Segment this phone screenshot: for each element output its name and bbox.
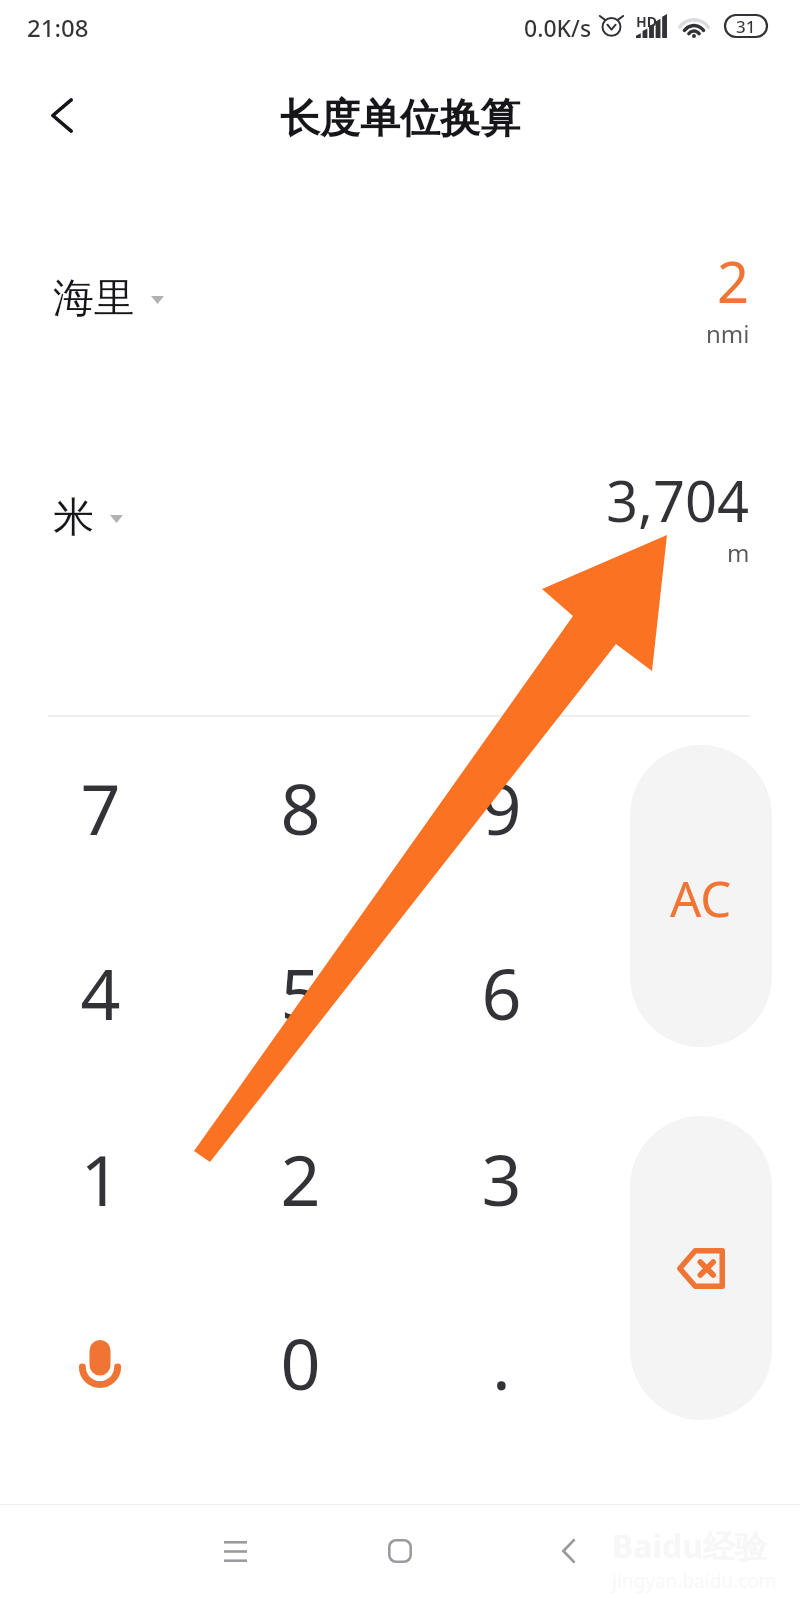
- staticText: 5: [280, 945, 321, 1040]
- staticText: 4: [80, 945, 121, 1040]
- staticText: 31: [736, 15, 756, 38]
- staticText: AC: [670, 865, 732, 932]
- button[interactable]: AC: [630, 745, 772, 1047]
- button[interactable]: Backspace: [630, 1116, 772, 1420]
- staticText: 21:08: [27, 11, 89, 44]
- staticText: 6: [481, 945, 522, 1040]
- button[interactable]: 海里: [0, 224, 800, 374]
- staticText: 长度单位换算: [280, 93, 520, 143]
- button[interactable]: 7: [0, 720, 200, 898]
- staticText: 3: [481, 1131, 522, 1226]
- staticText: 8: [280, 760, 321, 855]
- button[interactable]: 米: [0, 443, 800, 593]
- staticText: 1: [80, 1131, 121, 1226]
- staticText: 7: [80, 760, 121, 855]
- button[interactable]: 8: [200, 720, 400, 898]
- button[interactable]: 4: [0, 905, 200, 1083]
- button[interactable]: 5: [200, 905, 400, 1083]
- staticText: m: [727, 536, 750, 569]
- button[interactable]: 2: [200, 1091, 400, 1269]
- staticText: 9: [481, 760, 522, 855]
- staticText: 2: [280, 1131, 321, 1226]
- staticText: 0.0K/s: [524, 12, 592, 43]
- staticText: HD: [636, 12, 657, 31]
- button[interactable]: Voice input: [0, 1275, 200, 1453]
- button[interactable]: 9: [401, 720, 601, 898]
- staticText: 0: [280, 1315, 321, 1410]
- button[interactable]: 1: [0, 1091, 200, 1269]
- button[interactable]: Back: [34, 87, 90, 143]
- staticText: .: [492, 1315, 511, 1410]
- staticText: Baidu经验: [612, 1524, 768, 1568]
- staticText: nmi: [706, 317, 750, 350]
- staticText: 海里: [53, 273, 135, 325]
- staticText: 2: [717, 243, 750, 319]
- button[interactable]: 6: [401, 905, 601, 1083]
- button[interactable]: 3: [401, 1091, 601, 1269]
- button[interactable]: Home: [356, 1507, 444, 1595]
- button[interactable]: .: [401, 1275, 601, 1453]
- button[interactable]: Recent apps: [191, 1507, 279, 1595]
- staticText: 米: [53, 492, 94, 544]
- button[interactable]: Back: [524, 1507, 612, 1595]
- button[interactable]: 0: [200, 1275, 400, 1453]
- staticText: 3,704: [606, 462, 750, 538]
